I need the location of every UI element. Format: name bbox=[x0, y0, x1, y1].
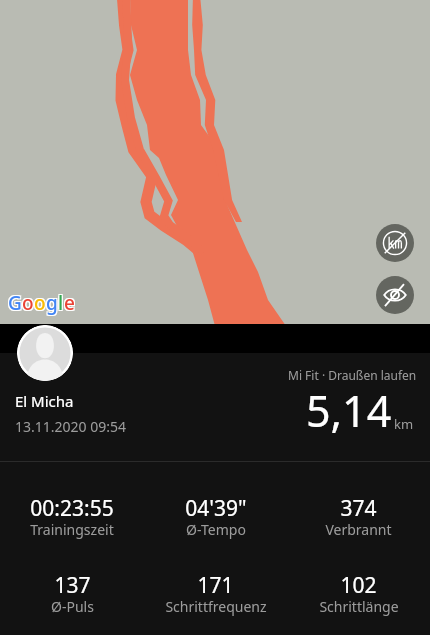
staticText: El Micha bbox=[15, 391, 74, 411]
staticText: Trainingszeit bbox=[30, 520, 114, 539]
staticText: G bbox=[7, 291, 21, 317]
staticText: Ø-Tempo bbox=[186, 520, 246, 539]
staticText: g bbox=[47, 289, 59, 315]
button[interactable]: Profile photo bbox=[17, 325, 73, 381]
staticText: e bbox=[65, 289, 76, 315]
button[interactable]: 04'39" bbox=[144, 494, 287, 542]
button[interactable]: Google bbox=[8, 290, 75, 316]
button[interactable]: 00:23:55 bbox=[0, 494, 144, 542]
staticText: Verbrannt bbox=[325, 520, 392, 539]
staticText: l bbox=[57, 289, 63, 315]
staticText: 374 bbox=[340, 494, 377, 523]
staticText: 00:23:55 bbox=[30, 494, 114, 523]
staticText: o bbox=[22, 290, 34, 316]
staticText: l bbox=[59, 291, 65, 317]
staticText: e bbox=[65, 291, 76, 317]
staticText: o bbox=[23, 291, 35, 317]
staticText: g bbox=[45, 289, 57, 315]
staticText: o bbox=[35, 291, 47, 317]
staticText: G bbox=[9, 291, 23, 317]
staticText: G bbox=[7, 289, 21, 315]
staticText: l bbox=[59, 289, 65, 315]
staticText: 137 bbox=[54, 571, 91, 600]
staticText: e bbox=[63, 291, 74, 317]
button[interactable]: Units off bbox=[376, 224, 414, 262]
staticText: g bbox=[46, 290, 58, 316]
staticText: o bbox=[33, 289, 45, 315]
staticText: Schrittfrequenz bbox=[165, 597, 267, 616]
staticText: G bbox=[9, 289, 23, 315]
staticText: l bbox=[58, 290, 64, 316]
staticText: o bbox=[21, 291, 33, 317]
staticText: l bbox=[57, 291, 63, 317]
staticText: 171 bbox=[197, 571, 234, 600]
staticText: o bbox=[34, 290, 46, 316]
button[interactable]: 102 bbox=[287, 571, 430, 619]
staticText: o bbox=[21, 289, 33, 315]
staticText: o bbox=[23, 289, 35, 315]
staticText: o bbox=[33, 291, 45, 317]
button[interactable]: Hide overlay bbox=[376, 276, 414, 314]
staticText: 04'39" bbox=[185, 494, 247, 523]
button[interactable]: 137 bbox=[0, 571, 144, 619]
staticText: Schrittlänge bbox=[319, 597, 399, 616]
staticText: 102 bbox=[340, 571, 377, 600]
staticText: Mi Fit · Draußen laufen bbox=[288, 367, 417, 383]
staticText: km bbox=[394, 415, 414, 433]
staticText: g bbox=[45, 291, 57, 317]
staticText: e bbox=[63, 289, 74, 315]
staticText: 13.11.2020 09:54 bbox=[15, 417, 126, 436]
staticText: e bbox=[64, 290, 75, 316]
staticText: Ø-Puls bbox=[51, 597, 94, 616]
staticText: o bbox=[35, 289, 47, 315]
button[interactable]: 171 bbox=[144, 571, 287, 619]
staticText: 5,14 bbox=[306, 381, 392, 440]
staticText: G bbox=[8, 290, 22, 316]
button[interactable]: 374 bbox=[287, 494, 430, 542]
staticText: g bbox=[47, 291, 59, 317]
